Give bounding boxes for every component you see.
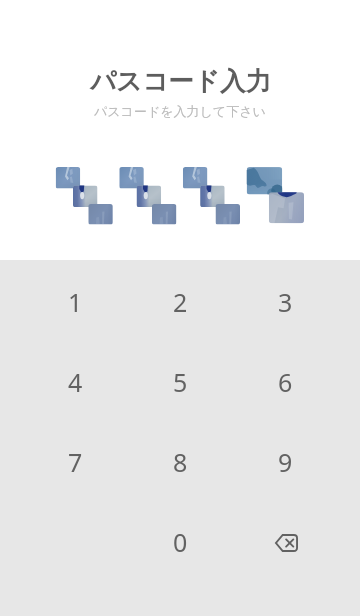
button[interactable]: 2: [128, 262, 233, 342]
button[interactable]: 1: [22, 262, 128, 342]
button[interactable]: Delete: [233, 502, 338, 582]
button[interactable]: 9: [233, 422, 338, 502]
button[interactable]: 3: [233, 262, 338, 342]
button[interactable]: 0: [128, 502, 233, 582]
staticText: 2: [173, 285, 188, 319]
staticText: 7: [68, 445, 83, 479]
button[interactable]: 6: [233, 342, 338, 422]
staticText: パスコード入力: [90, 65, 271, 97]
staticText: 3: [278, 285, 293, 319]
staticText: 0: [173, 525, 188, 559]
staticText: 1: [68, 285, 83, 319]
button[interactable]: 5: [128, 342, 233, 422]
staticText: 9: [278, 445, 293, 479]
staticText: 8: [173, 445, 188, 479]
staticText: 5: [173, 365, 188, 399]
button[interactable]: 8: [128, 422, 233, 502]
staticText: パスコードを入力して下さい: [94, 103, 266, 119]
button[interactable]: 4: [22, 342, 128, 422]
staticText: 4: [68, 365, 83, 399]
staticText: 6: [278, 365, 293, 399]
button[interactable]: 7: [22, 422, 128, 502]
